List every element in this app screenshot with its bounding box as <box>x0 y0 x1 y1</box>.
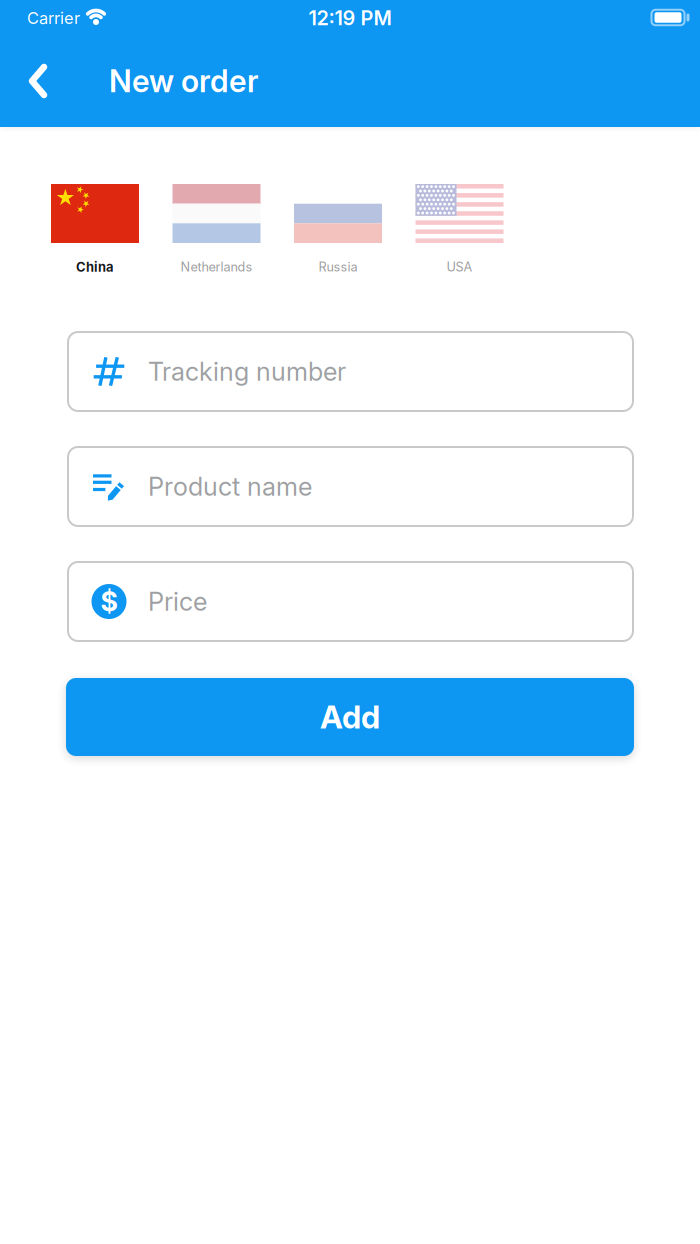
staticText: Netherlands <box>180 259 252 275</box>
staticText: Add <box>320 698 380 736</box>
staticText: 12:19 PM <box>308 6 391 30</box>
button[interactable]: Add <box>66 678 634 756</box>
staticText: China <box>76 259 114 275</box>
button[interactable]: USA <box>415 184 503 280</box>
staticText: USA <box>446 259 472 275</box>
staticText: Product name <box>148 471 312 502</box>
button[interactable]: $ <box>68 562 633 641</box>
button[interactable]: Back <box>18 57 58 105</box>
staticText: Price <box>148 586 207 617</box>
staticText: $ <box>100 585 117 618</box>
staticText: Carrier <box>27 8 80 28</box>
button[interactable]: China <box>51 184 139 280</box>
button[interactable]: Netherlands <box>172 184 260 280</box>
staticText: Russia <box>318 259 357 275</box>
staticText: New order <box>109 62 259 99</box>
staticText: Tracking number <box>148 356 346 387</box>
button[interactable]: Tracking number <box>68 332 633 411</box>
button[interactable]: Russia <box>294 184 382 280</box>
button[interactable]: Product name <box>68 447 633 526</box>
